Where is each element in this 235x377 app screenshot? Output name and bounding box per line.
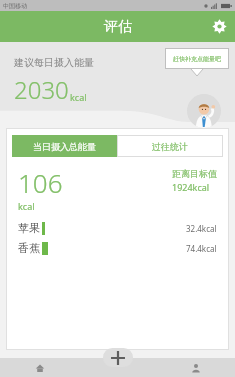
staticText: 距离目标值 [172,168,217,179]
staticText: kcal [70,91,87,103]
staticText: 当日摄入总能量 [33,141,96,152]
button[interactable]: Add [103,348,133,367]
staticText: 74.4kcal [186,243,217,254]
staticText: 苹果 [18,221,40,235]
button[interactable]: 当日摄入总能量 [12,135,117,157]
staticText: 赶快补充点能量吧 [173,55,221,63]
staticText: 评估 [104,18,132,36]
staticText: 32.4kcal [186,223,217,234]
staticText: 香蕉 [18,241,40,255]
button[interactable]: 香蕉 [6,238,229,258]
staticText: 过往统计 [152,141,188,152]
staticText: 106 [18,165,63,200]
button[interactable]: Settings [204,11,235,42]
staticText: 1924kcal [172,181,210,193]
button[interactable]: Profile [157,358,235,377]
button[interactable]: 苹果 [6,218,229,238]
button[interactable]: Home [0,358,79,377]
staticText: 2030 [14,73,69,106]
button[interactable]: Doctor avatar [187,94,221,128]
staticText: kcal [18,200,35,212]
staticText: 建议每日摄入能量 [14,56,94,69]
button[interactable]: 过往统计 [117,135,223,157]
staticText: 中国移动 [3,2,27,10]
